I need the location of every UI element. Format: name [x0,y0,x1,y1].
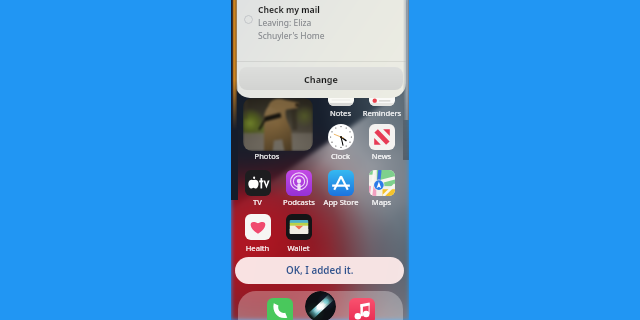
button[interactable] [369,124,395,150]
button[interactable] [328,170,354,196]
button[interactable] [243,98,313,151]
button[interactable] [369,170,395,196]
staticText: TV [235,197,280,207]
staticText: Clock [318,151,363,161]
staticText: OK, I added it. [286,264,354,277]
button[interactable]: Siri [305,291,336,320]
staticText: Maps [359,197,404,207]
staticText: Wallet [276,243,321,253]
button[interactable] [245,214,271,240]
staticText: News [359,151,404,161]
button[interactable] [349,298,375,320]
staticText: Leaving: Eliza [258,17,312,29]
staticText: Change [304,73,338,85]
button[interactable] [245,170,271,196]
button[interactable] [286,170,312,196]
staticText: Check my mail [258,4,320,16]
button[interactable]: Change [239,67,403,90]
button[interactable] [328,124,354,150]
button[interactable] [369,80,395,106]
staticText: Reminders [356,108,408,118]
staticText: Photos [237,151,297,161]
staticText: Podcasts [275,197,323,207]
button[interactable] [328,80,354,106]
staticText: App Store [317,197,365,207]
button[interactable] [267,298,293,320]
button[interactable] [286,214,312,240]
staticText: Health [235,243,280,253]
staticText: Schuyler's Home [258,30,325,42]
staticText: Notes [318,108,363,118]
button[interactable]: OK, I added it. [235,257,404,284]
